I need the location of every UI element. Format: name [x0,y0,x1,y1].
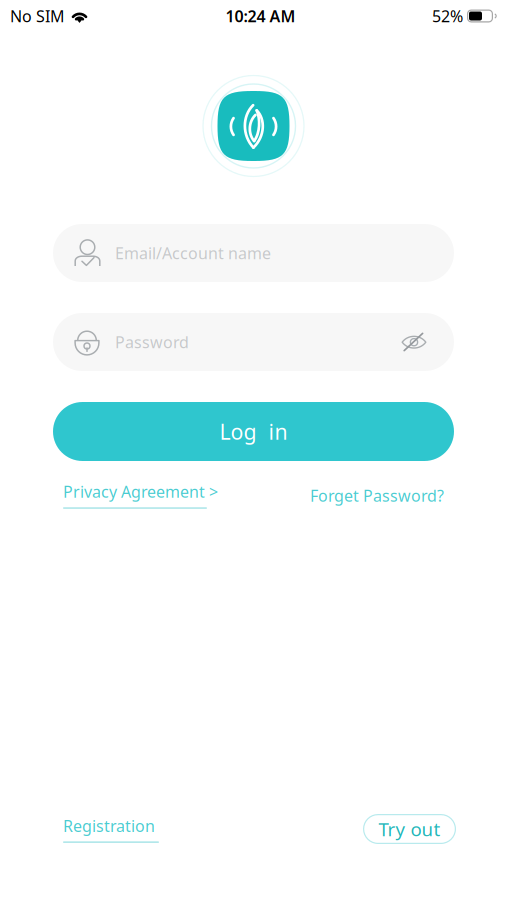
button[interactable]: Log in [53,402,454,461]
button[interactable]: Try out [363,814,456,844]
staticText: Log in [219,417,287,446]
staticText: 10:24 AM [225,5,295,27]
staticText: Registration [63,815,155,836]
button[interactable]: Show password [395,323,433,361]
staticText: Forget Password? [310,485,444,506]
button[interactable]: Forget Password? [310,484,444,506]
staticText: 52% [432,5,463,27]
staticText: Email/Account name [115,242,271,264]
button[interactable]: Registration [63,815,159,843]
button[interactable]: Privacy Agreement > [63,481,218,509]
staticText: No SIM [10,5,65,27]
staticText: Password [115,331,189,353]
staticText: Try out [378,817,440,841]
staticText: Privacy Agreement > [63,481,218,502]
